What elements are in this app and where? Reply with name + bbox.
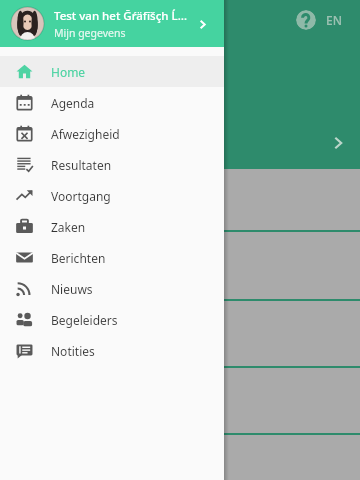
- button[interactable]: Zaken: [0, 211, 224, 242]
- button[interactable]: Afwezigheid: [0, 118, 224, 149]
- button[interactable]: Notities: [0, 335, 224, 366]
- button[interactable]: Nieuws: [0, 273, 224, 304]
- button[interactable]: [0, 368, 360, 433]
- staticText: EN: [326, 12, 342, 28]
- staticText: Home: [51, 64, 86, 80]
- staticText: Mijn gegevens: [54, 26, 126, 40]
- staticText: Agenda: [51, 95, 95, 111]
- staticText: Afwezigheid: [51, 126, 120, 142]
- button[interactable]: Home: [0, 56, 224, 87]
- staticText: Nieuws: [51, 281, 93, 297]
- staticText: Resultaten: [51, 157, 112, 173]
- button[interactable]: EN: [326, 12, 342, 28]
- button[interactable]: Help: [296, 10, 316, 30]
- staticText: Zaken: [51, 219, 86, 235]
- staticText: Voortgang: [51, 188, 111, 204]
- button[interactable]: Test van het Ğŕäfĭšçh ĹýĆėym: [0, 0, 224, 47]
- button[interactable]: Begeleiders: [0, 304, 224, 335]
- staticText: Notities: [51, 343, 95, 359]
- button[interactable]: [0, 232, 360, 299]
- staticText: Begeleiders: [51, 312, 118, 328]
- staticText: Test van het Ğŕäfĭšçh ĹýĆėym: [54, 8, 189, 24]
- button[interactable]: Berichten: [0, 242, 224, 273]
- button[interactable]: [0, 301, 360, 366]
- button[interactable]: Voortgang: [0, 180, 224, 211]
- button[interactable]: [0, 169, 360, 230]
- button[interactable]: Next: [326, 131, 350, 155]
- button[interactable]: [0, 435, 360, 480]
- staticText: Berichten: [51, 250, 106, 266]
- button[interactable]: Resultaten: [0, 149, 224, 180]
- button[interactable]: Agenda: [0, 87, 224, 118]
